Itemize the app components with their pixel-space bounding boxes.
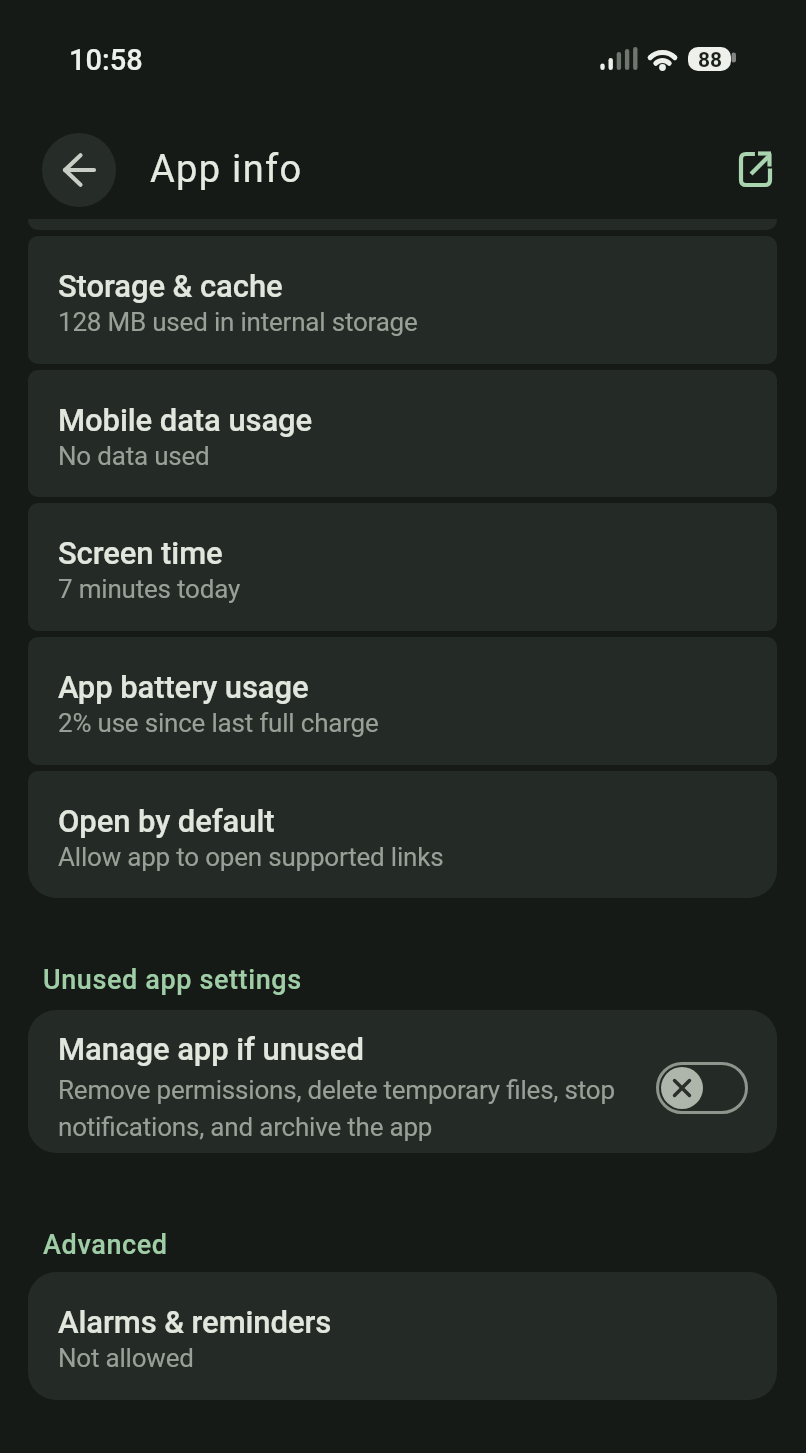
- staticText: Manage app if unused: [58, 1031, 364, 1067]
- button[interactable]: Storage & cache: [28, 236, 777, 364]
- staticText: 128 MB used in internal storage: [58, 307, 418, 337]
- button[interactable]: [656, 1062, 748, 1114]
- staticText: 88: [698, 48, 723, 71]
- staticText: Alarms & reminders: [58, 1304, 332, 1340]
- staticText: Remove permissions, delete temporary fil…: [58, 1075, 615, 1142]
- staticText: App battery usage: [58, 669, 309, 705]
- staticText: Not allowed: [58, 1343, 194, 1373]
- button[interactable]: Mobile data usage: [28, 370, 777, 497]
- button[interactable]: Manage app if unused: [28, 1010, 777, 1153]
- staticText: Storage & cache: [58, 268, 283, 304]
- button[interactable]: Alarms & reminders: [28, 1272, 777, 1400]
- staticText: App info: [150, 147, 303, 192]
- staticText: 7 minutes today: [58, 574, 241, 604]
- staticText: 2% use since last full charge: [58, 708, 379, 738]
- staticText: Unused app settings: [43, 964, 302, 996]
- staticText: Allow app to open supported links: [58, 842, 444, 872]
- button[interactable]: App battery usage: [28, 637, 777, 765]
- staticText: Screen time: [58, 535, 223, 571]
- button[interactable]: Open by default: [28, 771, 777, 898]
- button[interactable]: [725, 139, 785, 199]
- button[interactable]: [42, 133, 116, 207]
- staticText: Advanced: [43, 1229, 168, 1261]
- staticText: Open by default: [58, 803, 275, 839]
- staticText: 10:58: [69, 43, 143, 77]
- button[interactable]: Screen time: [28, 503, 777, 631]
- staticText: No data used: [58, 441, 210, 471]
- staticText: Mobile data usage: [58, 402, 313, 438]
